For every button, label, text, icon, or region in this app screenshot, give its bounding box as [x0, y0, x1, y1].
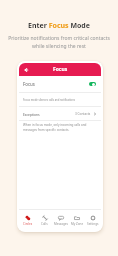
- staticText: Settings: [87, 222, 99, 226]
- staticText: Messages: [54, 222, 68, 226]
- button[interactable]: Back: [21, 65, 30, 74]
- staticText: My Zone: [71, 222, 84, 226]
- staticText: Focus: [23, 81, 35, 87]
- staticText: Calls: [41, 222, 48, 226]
- button[interactable]: My Zone: [69, 210, 85, 227]
- button[interactable]: Messages: [53, 210, 69, 227]
- staticText: Circles: [23, 222, 33, 226]
- staticText: Focus: [53, 66, 68, 73]
- button[interactable]: Circles: [19, 210, 36, 227]
- button[interactable]: Settings: [85, 210, 101, 227]
- button[interactable]: Exceptions: [19, 107, 101, 120]
- staticText: Exceptions: [23, 112, 40, 116]
- staticText: 3 Contacts: [75, 112, 91, 116]
- staticText: Enter Focus Mode: [28, 21, 90, 31]
- staticText: Prioritize notifications from critical c…: [8, 35, 110, 50]
- staticText: When in focus mode, only incoming calls …: [23, 123, 87, 132]
- button[interactable]: Focus: [19, 76, 101, 92]
- button[interactable]: Calls: [36, 210, 53, 227]
- staticText: Focus mode silences calls and notificati…: [23, 98, 76, 102]
